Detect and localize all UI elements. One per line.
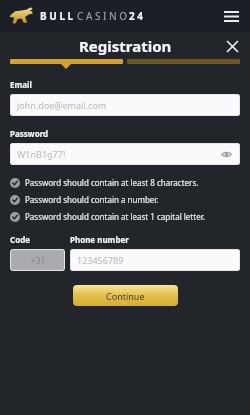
staticText: Phone number: [70, 234, 129, 245]
button[interactable]: 123456789: [70, 249, 240, 271]
button[interactable]: Show password: [219, 147, 233, 161]
staticText: john.doe@email.com: [17, 99, 107, 111]
button[interactable]: +31: [10, 249, 65, 271]
staticText: Email: [10, 79, 32, 90]
button[interactable]: B U L L: [8, 7, 144, 25]
button[interactable]: W1nB1g77!: [10, 143, 240, 165]
button[interactable]: Password should contain at least 1 capit…: [10, 209, 240, 224]
staticText: Password should contain at least 1 capit…: [25, 211, 205, 222]
staticText: W1nB1g77!: [17, 148, 66, 160]
staticText: B U L L: [40, 9, 74, 23]
staticText: Password should contain at least 8 chara…: [25, 177, 199, 188]
button[interactable]: Password should contain at least 8 chara…: [10, 175, 240, 190]
button[interactable]: Menu: [220, 5, 242, 27]
staticText: 2 4: [129, 9, 144, 23]
staticText: Password should contain a number.: [25, 194, 159, 205]
staticText: Password: [10, 128, 49, 139]
button[interactable]: Password should contain a number.: [10, 192, 240, 207]
staticText: Continue: [106, 290, 145, 302]
staticText: C A S I N O: [77, 9, 127, 23]
staticText: +31: [30, 254, 46, 266]
button[interactable]: Continue: [73, 285, 178, 306]
button[interactable]: Close: [222, 36, 242, 56]
staticText: Registration: [79, 36, 172, 56]
staticText: Code: [10, 234, 30, 245]
button[interactable]: john.doe@email.com: [10, 94, 240, 116]
staticText: 123456789: [77, 254, 124, 266]
